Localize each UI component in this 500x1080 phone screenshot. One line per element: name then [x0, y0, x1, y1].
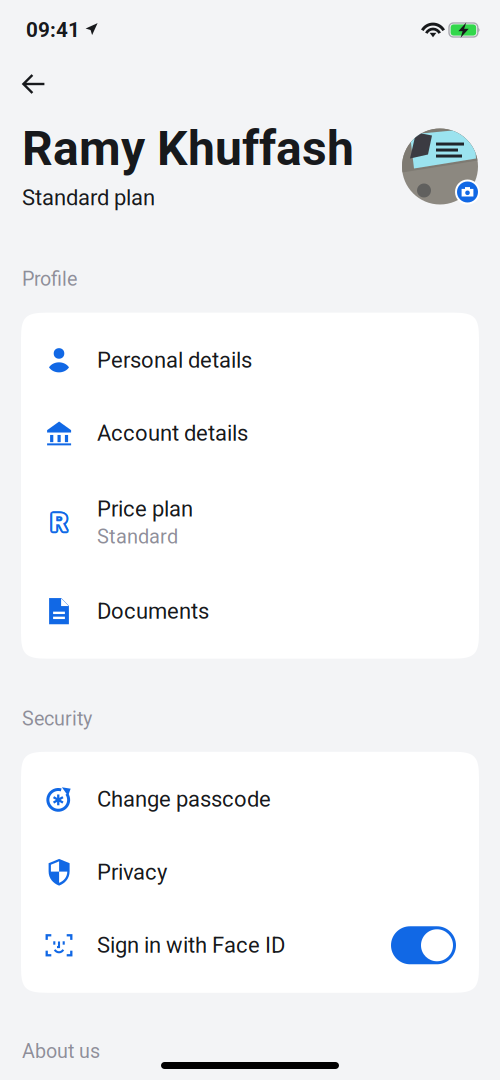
- staticText: Standard plan: [22, 185, 155, 211]
- button[interactable]: R: [21, 470, 479, 575]
- staticText: Privacy: [97, 859, 167, 885]
- staticText: R: [50, 508, 67, 540]
- staticText: R: [51, 505, 68, 536]
- staticText: R: [52, 506, 69, 537]
- button[interactable]: Personal details: [21, 324, 479, 397]
- staticText: Price plan: [97, 496, 193, 522]
- staticText: R: [52, 507, 69, 539]
- staticText: Personal details: [97, 347, 252, 373]
- staticText: Profile: [22, 267, 77, 291]
- button[interactable]: Privacy: [21, 836, 479, 909]
- staticText: Sign in with Face ID: [97, 932, 285, 958]
- button[interactable]: Documents: [21, 575, 479, 648]
- button[interactable]: Account details: [21, 397, 479, 470]
- staticText: Documents: [97, 598, 209, 624]
- staticText: R: [49, 506, 66, 538]
- staticText: R: [49, 507, 66, 539]
- staticText: R: [49, 506, 66, 537]
- button[interactable]: Sign in with Face ID: [21, 909, 479, 982]
- staticText: Security: [22, 707, 92, 730]
- staticText: R: [50, 506, 67, 538]
- staticText: 09:41: [26, 18, 80, 42]
- staticText: Change passcode: [97, 786, 271, 812]
- staticText: Account details: [97, 420, 248, 446]
- staticText: R: [49, 508, 66, 539]
- staticText: Standard: [97, 525, 178, 548]
- staticText: R: [51, 508, 68, 539]
- button[interactable]: Change profile photo: [401, 127, 479, 205]
- staticText: R: [52, 506, 69, 538]
- staticText: About us: [22, 1040, 100, 1063]
- staticText: Ramy Khuffash: [22, 120, 354, 177]
- button[interactable]: Back: [0, 60, 500, 108]
- staticText: R: [49, 505, 66, 536]
- button[interactable]: Change passcode: [21, 763, 479, 836]
- staticText: R: [50, 505, 67, 536]
